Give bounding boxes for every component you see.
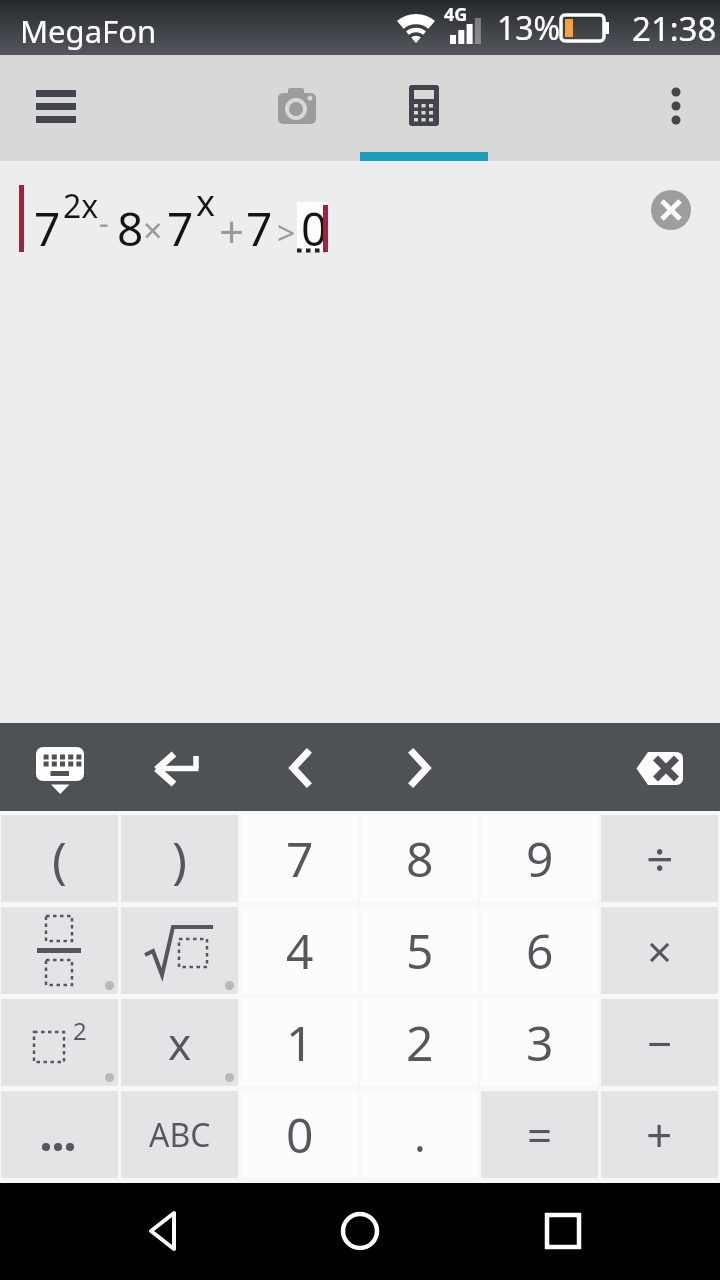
staticText: + bbox=[219, 201, 245, 261]
staticText: 7 bbox=[167, 197, 194, 260]
staticText: 6 bbox=[526, 918, 554, 983]
button[interactable]: 5 bbox=[361, 907, 478, 994]
staticText: ( bbox=[52, 825, 67, 893]
staticText: 7 bbox=[246, 197, 273, 260]
staticText: − bbox=[647, 1013, 673, 1073]
button[interactable] bbox=[144, 737, 216, 799]
staticText: 1 bbox=[286, 1010, 314, 1075]
staticText: 9 bbox=[526, 826, 554, 891]
staticText: 4 bbox=[286, 918, 314, 983]
button[interactable]: = bbox=[481, 1091, 598, 1178]
button[interactable]: 7 bbox=[241, 815, 358, 902]
button[interactable]: 0 bbox=[241, 1091, 358, 1178]
staticText: 0 bbox=[301, 197, 328, 260]
staticText: 2x bbox=[63, 184, 99, 228]
button[interactable]: ÷ bbox=[601, 815, 718, 902]
button[interactable] bbox=[24, 737, 96, 799]
staticText: 8 bbox=[117, 197, 144, 260]
staticText: 13% bbox=[497, 6, 561, 50]
staticText: 21:38 bbox=[632, 6, 717, 51]
staticText: 3 bbox=[526, 1010, 554, 1075]
button[interactable] bbox=[651, 190, 691, 230]
button[interactable] bbox=[360, 65, 488, 161]
button[interactable]: ABC bbox=[121, 1091, 238, 1178]
button[interactable]: 2 bbox=[361, 999, 478, 1086]
button[interactable]: x bbox=[121, 999, 238, 1086]
button[interactable]: 1 bbox=[241, 999, 358, 1086]
button[interactable]: ( bbox=[1, 815, 118, 902]
button[interactable]: − bbox=[601, 999, 718, 1086]
button[interactable] bbox=[317, 1191, 403, 1271]
staticText: ABC bbox=[149, 1113, 211, 1157]
button[interactable] bbox=[20, 75, 92, 141]
button[interactable]: 3 bbox=[481, 999, 598, 1086]
staticText: 0 bbox=[286, 1102, 314, 1167]
button[interactable] bbox=[520, 1191, 606, 1271]
button[interactable]: 4 bbox=[241, 907, 358, 994]
button[interactable]: 6 bbox=[481, 907, 598, 994]
button[interactable]: 8 bbox=[361, 815, 478, 902]
staticText: > bbox=[277, 211, 296, 255]
button[interactable] bbox=[121, 907, 238, 994]
staticText: ) bbox=[172, 825, 187, 893]
staticText: 5 bbox=[406, 918, 434, 983]
staticText: 2 bbox=[73, 1014, 87, 1047]
button[interactable]: . bbox=[361, 1091, 478, 1178]
button[interactable]: 2 bbox=[1, 999, 118, 1086]
staticText: MegaFon bbox=[20, 10, 157, 52]
button[interactable] bbox=[1, 907, 118, 994]
button[interactable] bbox=[618, 737, 702, 799]
staticText: + bbox=[646, 1103, 673, 1166]
staticText: 8 bbox=[406, 826, 434, 891]
button[interactable]: ) bbox=[121, 815, 238, 902]
staticText: x bbox=[196, 178, 216, 227]
staticText: = bbox=[527, 1105, 553, 1165]
button[interactable] bbox=[646, 75, 706, 141]
button[interactable] bbox=[384, 737, 456, 799]
staticText: 2 bbox=[406, 1010, 434, 1075]
button[interactable] bbox=[264, 737, 336, 799]
button[interactable]: × bbox=[601, 907, 718, 994]
button[interactable]: + bbox=[601, 1091, 718, 1178]
staticText: - bbox=[99, 202, 109, 243]
staticText: × bbox=[143, 207, 163, 253]
staticText: x bbox=[168, 1013, 192, 1073]
staticText: ÷ bbox=[646, 826, 674, 891]
staticText: 7 bbox=[286, 826, 314, 891]
button[interactable] bbox=[1, 1091, 118, 1178]
staticText: 7 bbox=[34, 197, 61, 260]
button[interactable] bbox=[120, 1191, 206, 1271]
staticText: . bbox=[414, 1105, 426, 1165]
button[interactable]: 9 bbox=[481, 815, 598, 902]
staticText: 4G bbox=[444, 2, 468, 27]
button[interactable] bbox=[233, 65, 361, 157]
staticText: × bbox=[647, 921, 673, 981]
